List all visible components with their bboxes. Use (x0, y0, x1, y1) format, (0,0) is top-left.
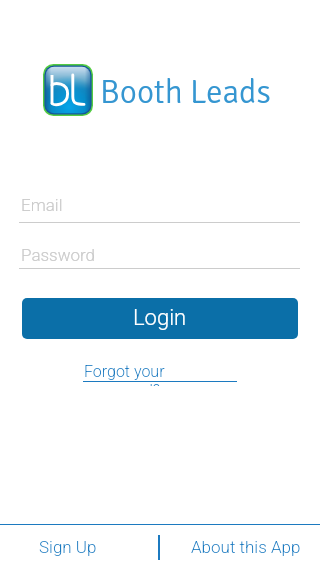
staticText: Password (21, 245, 96, 265)
button[interactable]: Email (19, 190, 300, 223)
button[interactable]: Password (19, 240, 300, 269)
button[interactable]: Sign Up (0, 525, 158, 568)
staticText: Email (21, 195, 63, 215)
staticText: About this App (191, 537, 301, 557)
staticText: Forgot your password? (84, 362, 240, 386)
staticText: Login (133, 305, 187, 331)
button[interactable]: Login (22, 298, 298, 339)
button[interactable]: About this App (160, 525, 320, 568)
other: Booth Leads logo (43, 64, 93, 116)
staticText: Booth Leads (100, 72, 271, 113)
staticText: Sign Up (39, 537, 97, 557)
button[interactable]: Forgot your password? (82, 360, 238, 384)
